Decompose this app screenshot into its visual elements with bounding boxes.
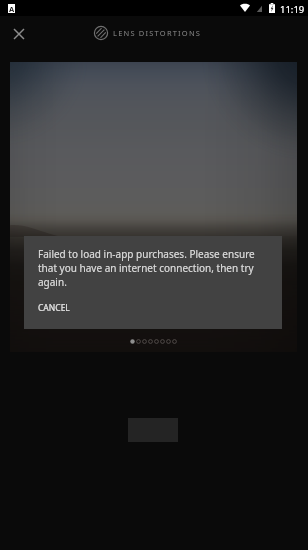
staticText: CANCEL: [38, 302, 70, 314]
staticText: LENS DISTORTIONS: [113, 28, 202, 38]
button[interactable]: Close: [6, 21, 31, 46]
staticText: A: [9, 4, 15, 13]
staticText: Failed to load in-app purchases. Please …: [38, 247, 270, 289]
button[interactable]: CANCEL: [38, 302, 70, 314]
staticText: 11:19: [280, 3, 305, 16]
